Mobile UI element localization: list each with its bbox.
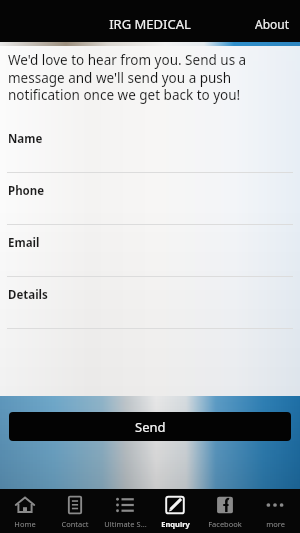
staticText: Phone — [8, 183, 45, 199]
staticText: We'd love to hear from you. Send us a me… — [8, 51, 300, 104]
staticText: Email — [8, 235, 40, 251]
staticText: About — [255, 16, 290, 32]
button[interactable]: more — [250, 489, 300, 533]
button[interactable]: Contact — [50, 489, 100, 533]
button[interactable]: Home — [0, 489, 50, 533]
button[interactable]: Send — [9, 412, 291, 441]
staticText: Contact — [61, 519, 89, 529]
staticText: Details — [8, 287, 48, 303]
button[interactable]: Enquiry — [150, 489, 200, 533]
staticText: IRG MEDICAL — [109, 15, 191, 33]
staticText: Send — [135, 418, 166, 436]
button[interactable]: Ultimate S... — [100, 489, 150, 533]
staticText: Ultimate S... — [104, 519, 147, 529]
staticText: Facebook — [208, 519, 242, 529]
staticText: Home — [14, 519, 36, 529]
button[interactable]: About — [245, 10, 300, 38]
staticText: Name — [8, 131, 43, 147]
button[interactable]: Facebook — [200, 489, 250, 533]
staticText: more — [266, 519, 285, 529]
staticText: Enquiry — [161, 519, 190, 529]
